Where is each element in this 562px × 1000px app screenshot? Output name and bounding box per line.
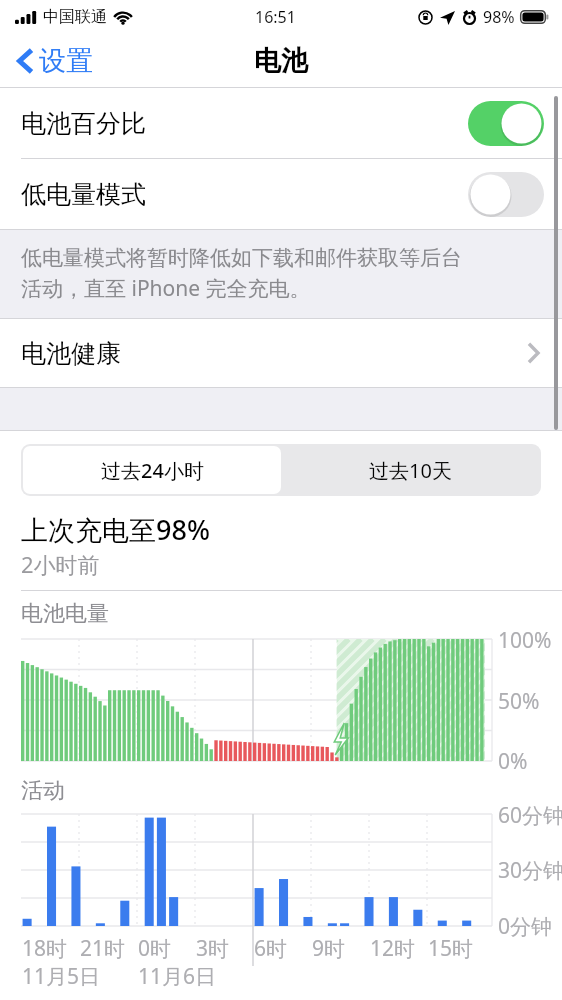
staticText: 0%: [498, 747, 528, 776]
staticText: 30分钟: [498, 856, 562, 885]
staticText: 12时: [370, 934, 416, 963]
staticText: 50%: [498, 687, 540, 716]
staticText: 100%: [498, 626, 552, 655]
staticText: 中国联通: [43, 7, 107, 27]
staticText: 电池百分比: [21, 108, 146, 139]
staticText: 0时: [138, 934, 172, 963]
staticText: 15时: [428, 934, 474, 963]
staticText: 60分钟: [498, 801, 562, 830]
staticText: 低电量模式将暂时降低如下载和邮件获取等后台 活动，直至 iPhone 完全充电。: [21, 245, 462, 302]
button[interactable]: 低电量模式 关: [468, 172, 544, 217]
button[interactable]: 电池健康: [0, 319, 562, 387]
staticText: 9时: [312, 934, 346, 963]
staticText: 过去24小时: [101, 457, 204, 484]
staticText: 过去10天: [369, 457, 452, 484]
staticText: 16:51: [255, 6, 296, 28]
staticText: 6时: [254, 934, 288, 963]
staticText: 3时: [196, 934, 230, 963]
staticText: 电池健康: [21, 338, 121, 369]
button[interactable]: 过去24小时: [23, 446, 281, 494]
staticText: 设置: [39, 44, 93, 78]
staticText: 电池: [254, 44, 308, 78]
staticText: 21时: [80, 934, 126, 963]
staticText: 活动: [21, 777, 65, 805]
staticText: 98%: [483, 6, 515, 28]
staticText: 18时: [22, 934, 68, 963]
staticText: 低电量模式: [21, 179, 146, 210]
button[interactable]: 设置: [12, 38, 99, 84]
staticText: 0分钟: [498, 912, 553, 941]
button[interactable]: 电池百分比 开: [468, 101, 544, 146]
staticText: 11月6日: [138, 962, 217, 991]
staticText: 11月5日: [22, 962, 101, 991]
button[interactable]: 过去10天: [281, 446, 539, 494]
button[interactable]: 电池百分比: [0, 88, 562, 158]
staticText: 电池电量: [21, 600, 109, 628]
staticText: 2小时前: [21, 549, 100, 579]
staticText: 上次充电至98%: [21, 511, 210, 548]
button[interactable]: 低电量模式: [0, 159, 562, 229]
